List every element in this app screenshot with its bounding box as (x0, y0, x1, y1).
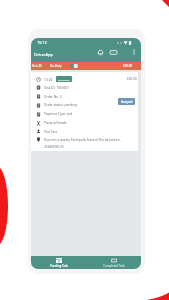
button[interactable]: Assigned (118, 98, 135, 105)
button[interactable]: Deliveries (108, 47, 119, 58)
staticText: Assigned (121, 100, 133, 104)
staticText: PENDING (58, 78, 70, 81)
staticText: $45.00 (123, 64, 133, 68)
staticText: Order status: pending (44, 103, 77, 107)
staticText: Completed Task (103, 264, 125, 268)
staticText: Pizzaria Vimide (44, 121, 67, 125)
staticText: DriverApp (34, 52, 54, 57)
button[interactable]: PENDING (56, 76, 72, 82)
staticText: $45.00 (127, 77, 137, 81)
staticText: Test Test (44, 130, 57, 134)
staticText: 13:20 (44, 77, 53, 81)
staticText: Payment Type: cod (44, 112, 73, 116)
button[interactable]: Pending Task (31, 256, 86, 269)
staticText: Rua nnn a quarto Petrópolis State of Rio… (44, 138, 128, 148)
button[interactable]: Duty switch (70, 63, 78, 69)
staticText: On-Duty (50, 64, 62, 68)
button[interactable]: Notifications (95, 47, 106, 58)
staticText: Oct. 20 (32, 64, 42, 68)
button[interactable]: More options (129, 47, 138, 56)
button[interactable]: 13:20 (31, 72, 138, 151)
staticText: Task ID: 1000001 (44, 86, 70, 90)
button[interactable]: Completed Task (86, 256, 141, 269)
staticText: Pending Task (50, 264, 68, 268)
staticText: Order No. 2 (44, 95, 62, 99)
staticText: 15:13 (37, 40, 47, 45)
